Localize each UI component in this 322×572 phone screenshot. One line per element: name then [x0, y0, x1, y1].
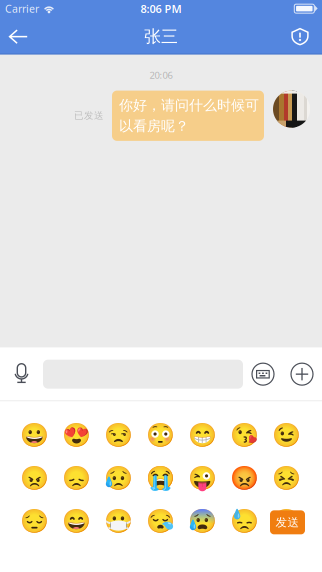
staticText: 张三 — [144, 26, 178, 47]
button[interactable]: Emoji — [139, 413, 181, 456]
staticText: 😠 — [19, 464, 48, 491]
button[interactable]: 发送 — [270, 510, 305, 534]
staticText: 😔 — [19, 507, 48, 534]
button[interactable]: Safety centre — [279, 20, 321, 54]
staticText: 😁 — [187, 421, 216, 448]
button[interactable]: Emoji — [97, 456, 139, 499]
staticText: 😰 — [187, 507, 216, 534]
staticText: 😪 — [145, 507, 174, 534]
staticText: 😒 — [103, 421, 132, 448]
staticText: 😷 — [103, 507, 132, 534]
staticText: 😓 — [229, 507, 258, 534]
button[interactable]: Emoji — [223, 499, 265, 542]
staticText: 😥 — [103, 464, 132, 491]
staticText: 😄 — [61, 507, 90, 534]
button[interactable]: Emoji — [13, 456, 55, 499]
button[interactable]: Emoji — [139, 456, 181, 499]
button[interactable]: Emoji — [55, 456, 97, 499]
button[interactable]: Message — [43, 348, 243, 401]
staticText: 😘 — [229, 421, 258, 448]
button[interactable]: Keyboard — [244, 348, 282, 401]
staticText: 8:06 PM — [140, 1, 181, 16]
button[interactable]: Emoji — [265, 456, 307, 499]
button[interactable]: Emoji — [13, 499, 55, 542]
button[interactable]: Emoji — [139, 499, 181, 542]
staticText: 😡 — [229, 464, 258, 491]
button[interactable]: Emoji — [181, 413, 223, 456]
staticText: 😳 — [145, 421, 174, 448]
staticText: 😭 — [145, 464, 174, 491]
button[interactable]: Emoji — [55, 499, 97, 542]
button[interactable]: More options — [282, 348, 322, 401]
staticText: 😉 — [271, 421, 300, 448]
button[interactable]: Emoji — [223, 456, 265, 499]
button[interactable]: Back — [0, 20, 36, 54]
staticText: 😀 — [19, 421, 48, 448]
staticText: 20:06 — [149, 69, 172, 81]
button[interactable]: Emoji — [265, 413, 307, 456]
button[interactable]: Voice message — [0, 348, 43, 401]
staticText: Carrier — [5, 1, 39, 16]
staticText: 😫 — [271, 507, 300, 534]
button[interactable]: Emoji — [265, 499, 307, 542]
staticText: 😍 — [61, 421, 90, 448]
button[interactable]: Emoji — [13, 413, 55, 456]
button[interactable]: Emoji — [181, 456, 223, 499]
staticText: 发送 — [275, 515, 299, 530]
staticText: 😜 — [187, 464, 216, 491]
staticText: 已发送 — [74, 110, 104, 122]
button[interactable]: Emoji — [55, 413, 97, 456]
staticText: 😞 — [61, 464, 90, 491]
button[interactable]: Emoji — [223, 413, 265, 456]
staticText: 你好，请问什么时候可 以看房呢？ — [119, 97, 259, 135]
button[interactable]: Emoji — [97, 413, 139, 456]
staticText: 😣 — [271, 464, 300, 491]
button[interactable]: Emoji — [181, 499, 223, 542]
button[interactable]: Emoji — [97, 499, 139, 542]
